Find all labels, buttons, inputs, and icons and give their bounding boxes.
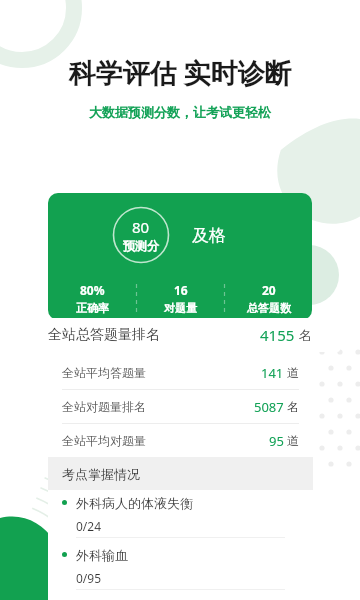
staticText: 外科病人的体液失衡 — [76, 495, 193, 511]
button[interactable]: 80 — [48, 193, 312, 320]
staticText: 80% — [80, 282, 105, 298]
staticText: 总答题数 — [247, 301, 291, 315]
button[interactable]: 全站对题量排名 — [48, 390, 313, 423]
staticText: 道 — [287, 365, 299, 380]
staticText: 科学评估 实时诊断 — [68, 54, 292, 91]
staticText: 道 — [287, 433, 299, 448]
button[interactable]: 16 — [137, 282, 224, 315]
staticText: 0/95 — [76, 570, 102, 586]
button[interactable]: 20 — [225, 282, 312, 315]
staticText: 正确率 — [76, 301, 109, 315]
staticText: 外科输血 — [76, 547, 128, 563]
staticText: 全站平均答题量 — [62, 365, 146, 380]
button[interactable]: 全站平均对题量 — [48, 424, 313, 457]
staticText: 预测分 — [123, 238, 159, 253]
button[interactable]: 外科输血 — [48, 542, 313, 594]
staticText: 名 — [287, 399, 299, 414]
staticText: 对题量 — [164, 301, 197, 315]
staticText: 0/24 — [76, 518, 102, 534]
staticText: 及格 — [192, 225, 226, 246]
staticText: 全站对题量排名 — [62, 399, 146, 414]
staticText: 80 — [132, 217, 150, 237]
staticText: 考点掌握情况 — [62, 466, 140, 482]
staticText: 全站平均对题量 — [62, 433, 146, 448]
staticText: 全站总答题量排名 — [48, 326, 160, 344]
staticText: 141 — [261, 364, 284, 382]
staticText: 5087 — [254, 398, 284, 416]
staticText: 大数据预测分数，让考试更轻松 — [89, 104, 271, 120]
staticText: 20 — [262, 282, 276, 298]
button[interactable]: 80% — [48, 282, 136, 315]
staticText: 95 — [269, 432, 284, 450]
button[interactable]: 外科病人的体液失衡 — [48, 490, 313, 542]
staticText: 4155 — [260, 325, 295, 345]
button[interactable]: 全站平均答题量 — [48, 356, 313, 389]
button[interactable]: 全站总答题量排名 — [20, 318, 340, 352]
staticText: 16 — [174, 282, 188, 298]
staticText: 名 — [299, 327, 312, 343]
